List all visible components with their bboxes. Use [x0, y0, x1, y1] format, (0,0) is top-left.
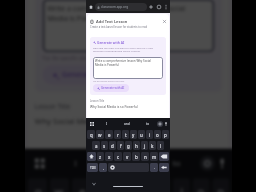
staticText: e [108, 132, 111, 138]
staticText: to [173, 159, 183, 168]
button[interactable]: k [149, 141, 156, 150]
button[interactable]: Voice input [163, 121, 168, 126]
staticText: y [138, 183, 146, 192]
button[interactable]: Tabs [155, 3, 163, 11]
staticText: I [106, 122, 108, 126]
staticText: Add Text Lesson [96, 19, 128, 24]
button[interactable]: x [105, 152, 113, 161]
button[interactable]: a [92, 141, 100, 150]
staticText: e [79, 183, 87, 192]
button[interactable]: l [157, 141, 164, 150]
button[interactable]: Write a comprehensive lesson Why Social … [93, 57, 163, 79]
button[interactable]: q [27, 178, 47, 192]
staticText: w [55, 183, 64, 192]
button[interactable]: f [117, 141, 124, 150]
button[interactable]: g [125, 141, 132, 150]
button[interactable]: Generate with AI [93, 84, 129, 92]
staticText: Why Social Media is so Powerful [35, 117, 153, 127]
staticText: Describe the topic you want to cover and… [93, 46, 154, 53]
staticText: v [126, 154, 129, 160]
staticText: w [98, 132, 102, 138]
button[interactable]: c [114, 152, 122, 161]
button[interactable]: u [138, 130, 145, 139]
button[interactable]: , [99, 163, 107, 172]
button[interactable]: p [162, 130, 169, 139]
staticText: t [125, 132, 127, 138]
button[interactable]: Enter [159, 163, 169, 172]
staticText: r [117, 132, 119, 138]
button[interactable]: o [154, 130, 161, 139]
button[interactable]: n [141, 152, 149, 161]
staticText: y [132, 132, 135, 138]
button[interactable]: Settings [156, 120, 163, 127]
staticText: and [119, 159, 133, 168]
button[interactable]: h [133, 141, 140, 150]
button[interactable]: w [96, 130, 104, 139]
staticText: Lesson Title [90, 99, 105, 103]
staticText: c [117, 154, 120, 160]
button[interactable]: New tab [147, 3, 155, 11]
button[interactable]: r [114, 130, 121, 139]
staticText: l [160, 143, 162, 149]
button[interactable]: b [132, 152, 140, 161]
button[interactable]: t [114, 178, 131, 192]
button[interactable]: classroom.app.org [95, 3, 147, 11]
button[interactable]: y [130, 130, 137, 139]
button[interactable]: m [150, 152, 158, 161]
staticText: h [135, 143, 138, 149]
button[interactable]: Close [162, 19, 167, 24]
staticText: p [164, 132, 167, 138]
staticText: and [124, 122, 130, 126]
button[interactable]: Backspace [159, 152, 169, 161]
button[interactable]: ?123 [87, 163, 98, 172]
button[interactable]: More options [163, 4, 169, 10]
button[interactable]: r [94, 178, 111, 192]
button[interactable]: Keyboard tools [88, 120, 95, 127]
button[interactable]: j [141, 141, 148, 150]
button[interactable]: s [101, 141, 108, 150]
button[interactable]: q [87, 130, 95, 139]
button[interactable]: Space [108, 163, 149, 172]
staticText: z [99, 154, 102, 160]
button[interactable]: Shift [87, 152, 96, 161]
button[interactable]: e [105, 130, 113, 139]
staticText: q [35, 183, 42, 192]
button[interactable]: d [109, 141, 116, 150]
staticText: o [156, 132, 159, 138]
button[interactable]: Generate with AI [42, 65, 131, 85]
button[interactable]: Settings [197, 154, 215, 171]
staticText: s [103, 143, 106, 149]
button[interactable]: . [150, 163, 158, 172]
staticText: Write a comprehensive lesson Why Social … [95, 59, 151, 67]
staticText: Tip: Be specific about your topic [42, 55, 121, 62]
staticText: a [95, 143, 98, 149]
button[interactable]: w [50, 178, 69, 192]
button[interactable]: y [133, 178, 151, 192]
staticText: p [217, 183, 225, 192]
button[interactable]: p [212, 178, 230, 192]
staticText: . [154, 165, 155, 170]
button[interactable]: t [122, 130, 129, 139]
staticText: Why Social Media is so Powerful [90, 105, 138, 109]
button[interactable]: e [72, 178, 91, 192]
button[interactable]: Home [87, 3, 95, 11]
staticText: ?123 [90, 166, 96, 170]
staticText: Generate with AI [97, 40, 125, 44]
button[interactable]: Write a comprehensive lesson Why Social … [42, 0, 215, 53]
button[interactable]: o [193, 178, 210, 192]
staticText: Lesson Title [35, 102, 72, 112]
button[interactable]: Keyboard tools [30, 154, 47, 171]
button[interactable]: z [97, 152, 104, 161]
button[interactable]: Hide keyboard [91, 181, 97, 187]
button[interactable]: v [123, 152, 131, 161]
staticText: Generate with AI [101, 86, 125, 90]
button[interactable]: i [146, 130, 153, 139]
staticText: q [90, 132, 93, 138]
button[interactable]: Voice input [215, 156, 227, 168]
staticText: g [127, 143, 130, 149]
staticText: to [146, 122, 150, 126]
staticText: n [144, 154, 147, 160]
staticText: Write a comprehensive lesson Why Social … [47, 3, 185, 23]
button[interactable]: i [173, 178, 190, 192]
